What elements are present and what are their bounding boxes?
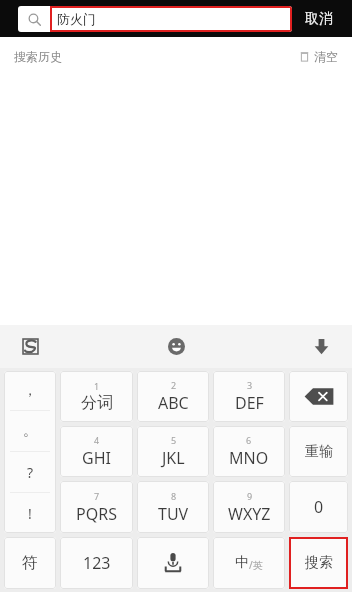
button[interactable]: 防火门	[18, 6, 292, 32]
staticText: 清空	[314, 49, 338, 64]
button[interactable]: ，	[4, 371, 56, 410]
button[interactable]: Voice input and space	[137, 537, 209, 589]
button[interactable]: 符	[4, 537, 56, 589]
staticText: TUV	[158, 503, 189, 525]
staticText: 6	[246, 434, 252, 446]
staticText: 防火门	[57, 11, 96, 27]
staticText: ABC	[158, 392, 189, 414]
button[interactable]: 6	[213, 426, 285, 477]
staticText: 搜索历史	[14, 49, 62, 64]
button[interactable]: 中	[213, 537, 285, 589]
staticText: ，	[23, 382, 37, 400]
button[interactable]: 0	[289, 481, 348, 533]
staticText: 搜索	[305, 554, 333, 572]
staticText: GHI	[82, 447, 111, 469]
staticText: !	[28, 504, 32, 523]
staticText: MNO	[229, 447, 269, 469]
button[interactable]: ?	[4, 452, 56, 492]
staticText: 重输	[305, 443, 333, 461]
button[interactable]: 取消	[292, 0, 346, 37]
staticText: 3	[247, 379, 253, 391]
staticText: JKL	[162, 447, 185, 469]
staticText: 中	[235, 554, 249, 572]
staticText: 分词	[81, 393, 113, 413]
staticText: 123	[83, 552, 111, 574]
staticText: DEF	[235, 392, 264, 414]
button[interactable]: 1	[60, 371, 133, 422]
staticText: 2	[171, 379, 177, 391]
button[interactable]: 7	[60, 481, 133, 533]
staticText: /英	[249, 558, 263, 572]
button[interactable]: 4	[60, 426, 133, 477]
staticText: 取消	[305, 10, 333, 28]
staticText: 符	[22, 553, 38, 573]
button[interactable]: 3	[213, 371, 285, 422]
button[interactable]: !	[4, 493, 56, 533]
button[interactable]: 2	[137, 371, 209, 422]
button[interactable]: 8	[137, 481, 209, 533]
staticText: 0	[314, 496, 324, 518]
button[interactable]: 重输	[289, 426, 348, 477]
staticText: 1	[94, 380, 100, 392]
staticText: 7	[94, 490, 100, 502]
staticText: 8	[171, 490, 177, 502]
staticText: ?	[27, 463, 34, 482]
button[interactable]: 。	[4, 411, 56, 451]
button[interactable]: 搜索	[289, 537, 348, 589]
button[interactable]: 123	[60, 537, 133, 589]
button[interactable]: Sogou input	[0, 325, 118, 368]
staticText: 。	[23, 422, 37, 440]
button[interactable]: 清空	[299, 49, 338, 64]
staticText: PQRS	[76, 503, 117, 525]
staticText: WXYZ	[228, 503, 271, 525]
button[interactable]: 5	[137, 426, 209, 477]
staticText: 9	[247, 490, 253, 502]
button[interactable]: Emoji	[118, 325, 235, 368]
staticText: 5	[171, 434, 177, 446]
button[interactable]: 9	[213, 481, 285, 533]
other: Voice input and space	[137, 537, 209, 589]
other: Backspace	[289, 371, 348, 422]
staticText: 4	[94, 434, 100, 446]
button[interactable]: Backspace	[289, 371, 348, 422]
button[interactable]: Hide keyboard	[235, 325, 352, 368]
